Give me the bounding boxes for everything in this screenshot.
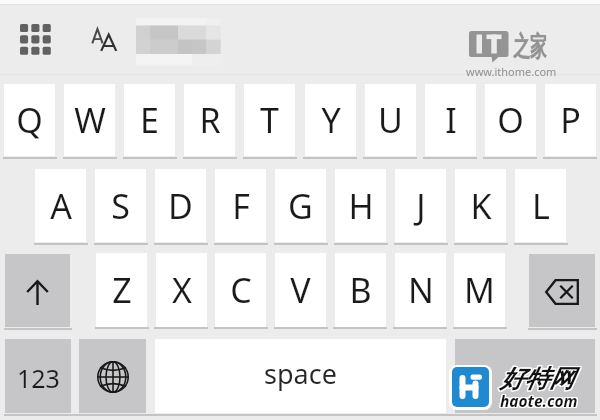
staticText: L: [532, 183, 550, 229]
button[interactable]: C: [215, 253, 266, 327]
staticText: space: [264, 355, 337, 392]
staticText: haote.com: [500, 390, 578, 411]
staticText: I: [445, 97, 457, 143]
staticText: 好特网: [500, 363, 574, 394]
staticText: Q: [16, 97, 43, 143]
staticText: G: [288, 183, 313, 229]
staticText: B: [349, 267, 372, 313]
button[interactable]: Y: [305, 84, 356, 156]
staticText: haote.com: [500, 389, 578, 410]
staticText: E: [140, 97, 159, 143]
staticText: 好特网: [499, 363, 573, 394]
button[interactable]: P: [545, 84, 596, 156]
button[interactable]: T: [244, 84, 295, 156]
staticText: 之家: [513, 30, 546, 64]
staticText: M: [464, 267, 495, 313]
button[interactable]: X: [156, 253, 207, 327]
staticText: Z: [112, 267, 132, 313]
button[interactable]: 123: [5, 339, 71, 413]
button[interactable]: Shift: [5, 254, 70, 327]
button[interactable]: W: [64, 84, 115, 156]
staticText: haote.com: [501, 391, 579, 412]
staticText: 好特网: [501, 362, 575, 393]
button[interactable]: F: [215, 169, 266, 242]
button[interactable]: D: [155, 169, 206, 242]
button[interactable]: Change language: [79, 339, 146, 413]
staticText: D: [168, 183, 193, 229]
staticText: W: [74, 97, 106, 143]
staticText: haote.com: [500, 391, 578, 412]
button[interactable]: K: [455, 169, 506, 242]
button[interactable]: Q: [4, 84, 55, 156]
staticText: O: [497, 97, 524, 143]
staticText: haote.com: [499, 391, 577, 412]
button[interactable]: Keyboard layouts: [12, 16, 62, 66]
staticText: 123: [17, 361, 60, 395]
staticText: J: [416, 183, 426, 229]
staticText: haote.com: [499, 389, 577, 410]
button[interactable]: J: [395, 169, 446, 242]
staticText: haote.com: [501, 389, 579, 410]
button[interactable]: I: [425, 84, 476, 156]
button[interactable]: Text size: [88, 22, 124, 56]
button[interactable]: H: [335, 169, 386, 242]
button[interactable]: M: [454, 253, 505, 327]
staticText: 好特网: [500, 364, 574, 395]
button[interactable]: Return: [455, 339, 595, 413]
button[interactable]: L: [515, 169, 566, 242]
button[interactable]: space: [155, 339, 446, 413]
button[interactable]: O: [485, 84, 536, 156]
button[interactable]: E: [124, 84, 175, 156]
staticText: haote.com: [501, 390, 579, 411]
staticText: K: [470, 183, 492, 229]
staticText: R: [199, 97, 221, 143]
button[interactable]: R: [184, 84, 235, 156]
staticText: T: [260, 97, 279, 143]
staticText: P: [560, 97, 581, 143]
staticText: www.ithome.com: [466, 64, 557, 79]
staticText: 好特网: [499, 362, 573, 393]
staticText: Y: [321, 97, 341, 143]
button[interactable]: G: [275, 169, 326, 242]
staticText: 好特网: [501, 364, 575, 395]
staticText: F: [232, 183, 250, 229]
staticText: 好特网: [500, 362, 574, 393]
staticText: U: [378, 97, 403, 143]
staticText: N: [408, 267, 434, 313]
button[interactable]: S: [95, 169, 146, 242]
staticText: A: [50, 183, 72, 229]
button[interactable]: Z: [96, 253, 147, 327]
button[interactable]: B: [335, 253, 386, 327]
button[interactable]: A: [35, 169, 86, 242]
staticText: S: [111, 183, 130, 229]
button[interactable]: U: [365, 84, 416, 156]
staticText: haote.com: [499, 390, 577, 411]
button[interactable]: Backspace: [529, 254, 595, 327]
staticText: V: [290, 267, 311, 313]
staticText: H: [348, 183, 374, 229]
staticText: 好特网: [499, 364, 573, 395]
staticText: 好特网: [501, 363, 575, 394]
staticText: X: [172, 267, 192, 313]
button[interactable]: N: [395, 253, 446, 327]
staticText: C: [230, 267, 252, 313]
button[interactable]: V: [275, 253, 326, 327]
